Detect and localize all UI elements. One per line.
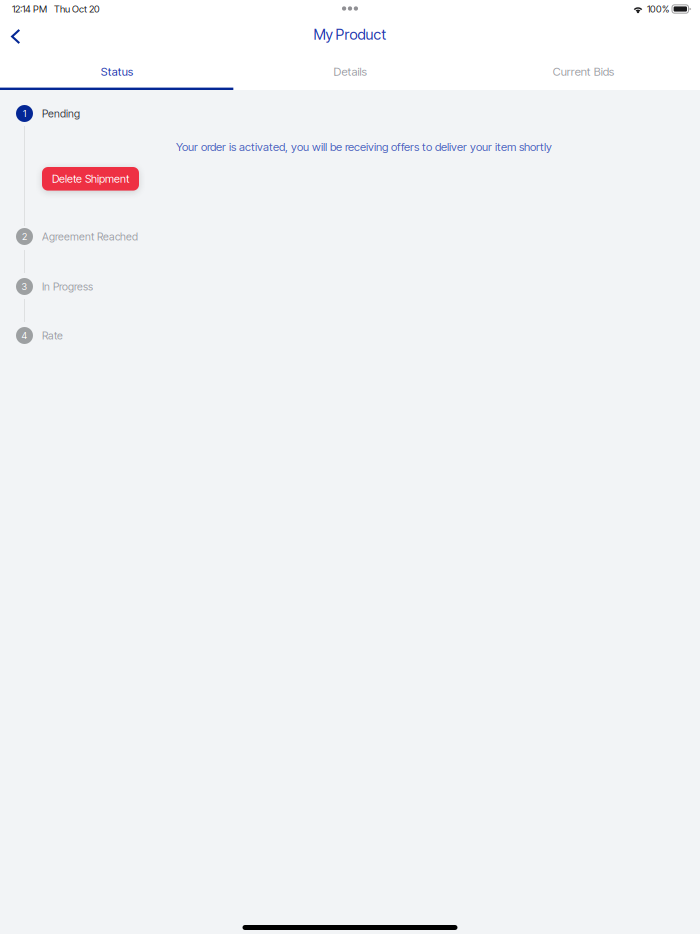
staticText: Details: [333, 65, 366, 78]
staticText: 3: [21, 281, 27, 292]
button[interactable]: Delete Shipment: [42, 167, 139, 191]
staticText: Your order is activated, you will be rec…: [176, 140, 552, 154]
staticText: Rate: [42, 329, 63, 342]
staticText: 1: [23, 108, 26, 119]
staticText: Thu Oct 20: [54, 3, 100, 15]
staticText: 4: [21, 330, 27, 341]
staticText: Current Bids: [553, 65, 614, 78]
button[interactable]: Current Bids: [467, 53, 700, 90]
button[interactable]: Back: [0, 20, 33, 51]
staticText: My Product: [313, 26, 386, 43]
staticText: In Progress: [42, 280, 93, 293]
staticText: Agreement Reached: [42, 230, 138, 243]
button[interactable]: Details: [233, 53, 467, 90]
staticText: Pending: [42, 107, 80, 120]
staticText: 2: [22, 231, 27, 242]
staticText: Status: [101, 65, 133, 78]
staticText: 12:14 PM: [12, 3, 47, 15]
button[interactable]: Status: [0, 53, 233, 90]
staticText: 100%: [647, 3, 669, 15]
staticText: Delete Shipment: [52, 172, 129, 185]
